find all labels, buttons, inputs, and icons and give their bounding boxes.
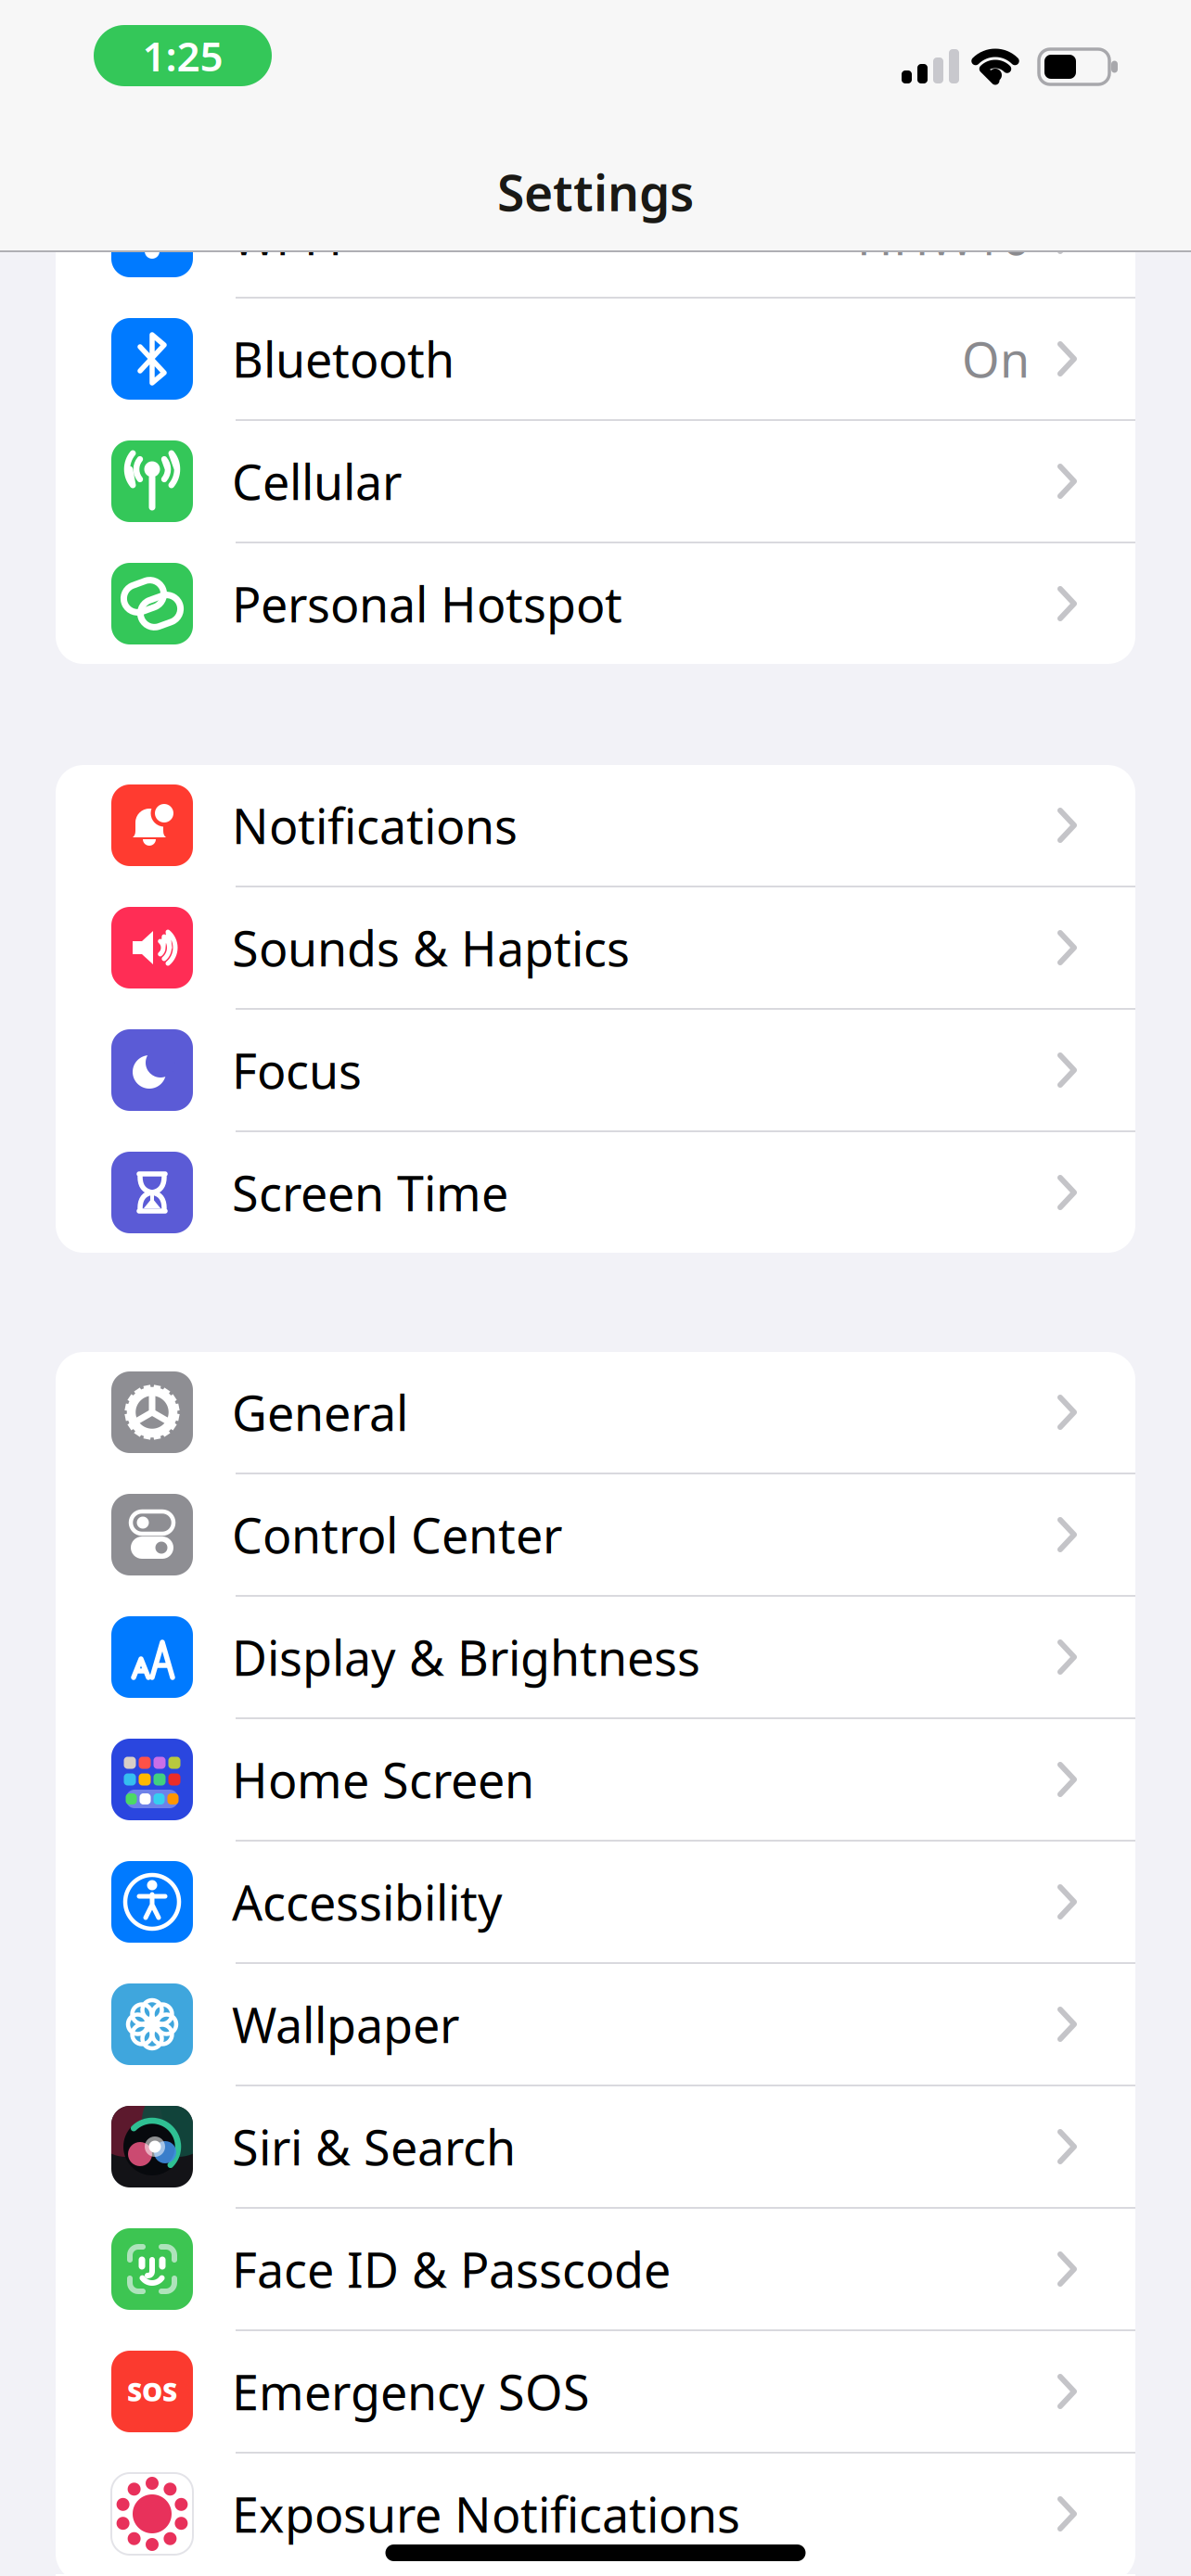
button[interactable]: Cellular <box>56 421 1135 542</box>
staticText: SOS <box>127 2374 177 2409</box>
staticText: Screen Time <box>232 1160 508 1225</box>
staticText: Control Center <box>232 1503 562 1567</box>
button[interactable]: General <box>56 1352 1135 1473</box>
button[interactable]: Notifications <box>56 765 1135 886</box>
button[interactable]: Focus <box>56 1010 1135 1130</box>
staticText: Home Screen <box>232 1747 534 1812</box>
button[interactable]: Face ID & Passcode <box>56 2209 1135 2329</box>
staticText: On <box>962 327 1030 391</box>
staticText: Personal Hotspot <box>232 572 622 636</box>
staticText: General <box>232 1380 408 1444</box>
button[interactable]: SOS <box>56 2331 1135 2452</box>
button[interactable]: Personal Hotspot <box>56 543 1135 664</box>
button[interactable]: Home Screen <box>56 1719 1135 1840</box>
staticText: Notifications <box>232 793 518 857</box>
button[interactable]: Display & Brightness <box>56 1597 1135 1717</box>
staticText: Siri & Search <box>232 2115 516 2179</box>
staticText: Cellular <box>232 449 402 513</box>
staticText: Accessibility <box>232 1870 503 1934</box>
staticText: Emergency SOS <box>232 2359 590 2424</box>
button[interactable]: Wi-Fi <box>56 176 1135 297</box>
button[interactable]: Control Center <box>56 1474 1135 1595</box>
staticText: Bluetooth <box>232 327 455 391</box>
button[interactable]: Accessibility <box>56 1842 1135 1962</box>
staticText: 1:25 <box>142 29 223 83</box>
staticText: Wallpaper <box>232 1992 459 2056</box>
button[interactable]: Siri & Search <box>56 2086 1135 2207</box>
button[interactable]: Exposure Notifications <box>56 2454 1135 2574</box>
staticText: Focus <box>232 1038 362 1102</box>
button[interactable]: Wallpaper <box>56 1964 1135 2085</box>
staticText: Display & Brightness <box>232 1625 700 1689</box>
button[interactable]: Bluetooth <box>56 299 1135 419</box>
staticText: Face ID & Passcode <box>232 2237 671 2301</box>
staticText: Settings <box>497 159 694 225</box>
button[interactable]: Sounds & Haptics <box>56 887 1135 1008</box>
staticText: Wi-Fi <box>232 204 341 269</box>
staticText: HHW16 <box>857 204 1030 269</box>
button[interactable]: Screen Time <box>56 1132 1135 1253</box>
staticText: Sounds & Haptics <box>232 916 630 980</box>
staticText: Exposure Notifications <box>232 2482 740 2546</box>
